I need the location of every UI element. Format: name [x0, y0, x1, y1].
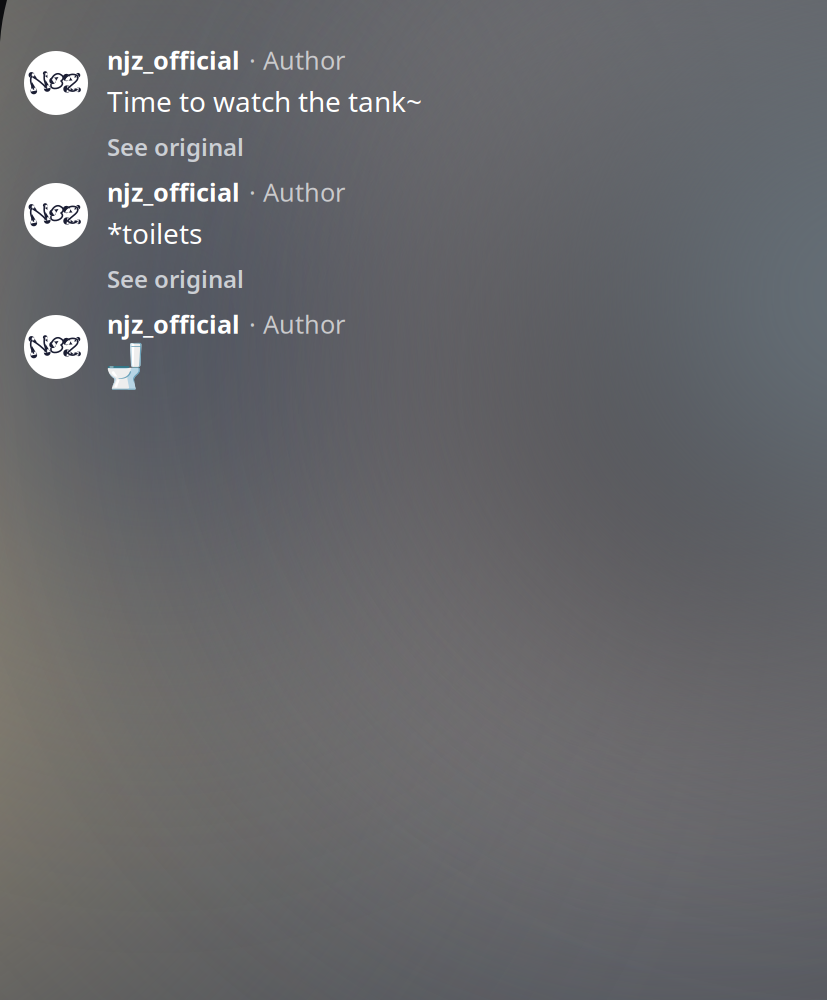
staticText: 🚽 [98, 342, 151, 390]
button[interactable]: njz_official [107, 307, 345, 341]
staticText: · Author [249, 307, 345, 341]
staticText: njz_official [107, 175, 240, 209]
button[interactable]: See original [107, 131, 244, 163]
staticText: njz_official [107, 43, 240, 77]
staticText: · Author [249, 43, 345, 77]
staticText: See original [107, 263, 244, 295]
button[interactable]: njz_official [107, 175, 345, 209]
button[interactable]: njz_official profile picture [24, 51, 88, 115]
button[interactable]: njz_official profile picture [24, 183, 88, 247]
staticText: *toilets [107, 215, 202, 252]
staticText: Time to watch the tank~ [107, 83, 422, 120]
button[interactable]: See original [107, 263, 244, 295]
staticText: See original [107, 131, 244, 163]
staticText: njz_official [107, 307, 240, 341]
staticText: · Author [249, 175, 345, 209]
button[interactable]: njz_official profile picture [24, 315, 88, 379]
button[interactable]: njz_official [107, 43, 345, 77]
